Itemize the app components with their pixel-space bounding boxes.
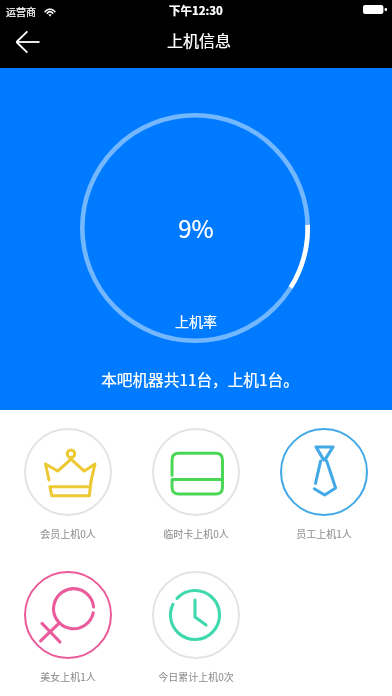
staticText: 员工上机1人 [296, 526, 352, 540]
button[interactable]: 员工上机1人 [260, 428, 388, 540]
staticText: 会员上机0人 [40, 526, 96, 540]
button[interactable]: 会员上机0人 [4, 428, 132, 540]
button[interactable]: 临时卡上机0人 [132, 428, 260, 540]
staticText: 本吧机器共11台，上机1台。 [101, 368, 299, 391]
button[interactable]: Back [8, 22, 48, 62]
button[interactable]: 美女上机1人 [4, 571, 132, 683]
staticText: 下午12:30 [169, 2, 223, 19]
button[interactable]: 今日累计上机0次 [132, 571, 260, 683]
staticText: 运营商 [6, 4, 36, 18]
staticText: 上机率 [175, 311, 217, 331]
staticText: 临时卡上机0人 [163, 526, 229, 540]
staticText: 今日累计上机0次 [158, 669, 234, 683]
staticText: 美女上机1人 [40, 669, 96, 683]
staticText: 上机信息 [167, 28, 232, 51]
staticText: 9% [178, 210, 214, 245]
